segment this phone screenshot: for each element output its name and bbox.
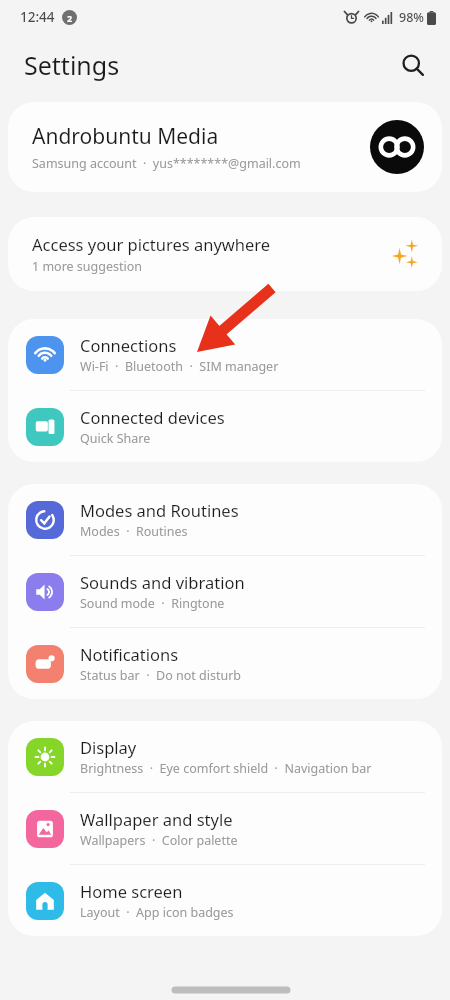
staticText: 12:44 (20, 8, 55, 26)
staticText: Wallpaper and style (80, 808, 233, 830)
staticText: 98% (399, 9, 424, 26)
button[interactable]: Sounds and vibration (8, 556, 442, 627)
staticText: Sounds and vibration (80, 571, 245, 593)
button[interactable]: Search (390, 42, 436, 88)
staticText: Quick Share (80, 430, 151, 447)
staticText: Wallpapers · Color palette (80, 832, 238, 849)
button[interactable]: Connected devices (8, 391, 442, 462)
button[interactable]: Connections (8, 319, 442, 390)
staticText: Status bar · Do not disturb (80, 667, 242, 684)
staticText: Home screen (80, 880, 183, 902)
staticText: Modes · Routines (80, 523, 188, 540)
staticText: Androbuntu Media (32, 122, 219, 151)
button[interactable]: Wallpaper and style (8, 793, 442, 864)
staticText: Layout · App icon badges (80, 904, 234, 921)
staticText: Wi-Fi · Bluetooth · SIM manager (80, 358, 279, 375)
button[interactable]: Home screen (8, 865, 442, 936)
staticText: Notifications (80, 643, 179, 665)
staticText: Modes and Routines (80, 499, 239, 521)
staticText: Access your pictures anywhere (32, 233, 271, 255)
staticText: Display (80, 736, 137, 758)
staticText: Brightness · Eye comfort shield · Naviga… (80, 760, 372, 777)
button[interactable]: Modes and Routines (8, 484, 442, 555)
button[interactable]: Androbuntu Media (8, 102, 442, 192)
staticText: 1 more suggestion (32, 258, 143, 275)
button[interactable]: Access your pictures anywhere (8, 217, 442, 291)
staticText: Settings (24, 48, 120, 82)
staticText: Samsung account · yus********@gmail.com (32, 155, 301, 172)
staticText: Connections (80, 334, 177, 356)
staticText: Sound mode · Ringtone (80, 595, 225, 612)
button[interactable]: Notifications (8, 628, 442, 699)
staticText: Connected devices (80, 406, 225, 428)
button[interactable]: Display (8, 721, 442, 792)
staticText: 2 (67, 12, 73, 24)
